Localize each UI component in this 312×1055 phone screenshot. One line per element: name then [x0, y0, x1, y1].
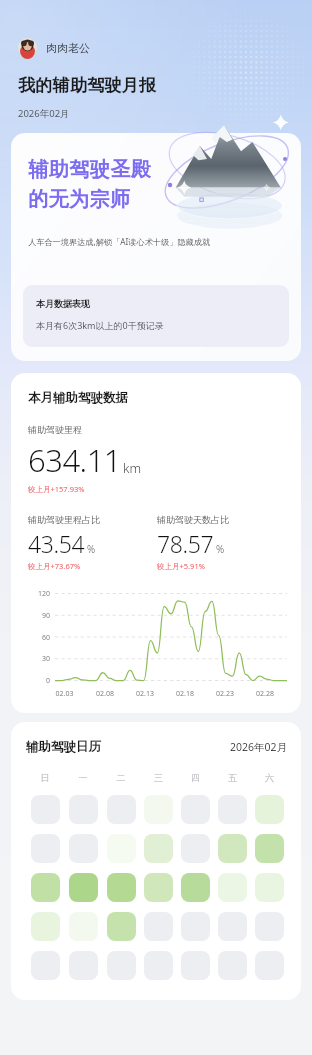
staticText: %	[216, 542, 225, 556]
button[interactable]: Calendar day	[144, 951, 173, 980]
button[interactable]: User avatar	[18, 38, 90, 57]
button[interactable]: Calendar day	[218, 873, 247, 902]
button[interactable]: Calendar day	[255, 912, 284, 941]
button[interactable]: Calendar day	[69, 873, 98, 902]
button[interactable]: Calendar day	[107, 951, 136, 980]
button[interactable]: Calendar day	[218, 795, 247, 824]
button[interactable]: Calendar day	[31, 834, 60, 863]
button[interactable]: Calendar day	[31, 912, 60, 941]
staticText: 634.11	[28, 439, 122, 481]
staticText: 60	[28, 633, 50, 643]
button[interactable]: Calendar day	[69, 951, 98, 980]
staticText: 辅助驾驶天数占比	[157, 514, 229, 525]
button[interactable]: Calendar day	[107, 873, 136, 902]
staticText: 02.23	[205, 689, 245, 699]
staticText: 02.28	[245, 689, 285, 699]
staticText: 的无为宗师	[28, 187, 131, 212]
staticText: 日	[26, 772, 64, 783]
button[interactable]: Calendar day	[107, 795, 136, 824]
button[interactable]: Calendar day	[181, 951, 210, 980]
staticText: 2026年02月	[18, 107, 70, 120]
staticText: 本月辅助驾驶数据	[28, 390, 128, 406]
staticText: 02.08	[85, 689, 125, 699]
staticText: 90	[28, 611, 50, 621]
staticText: 四	[177, 772, 214, 783]
button[interactable]: Calendar day	[69, 912, 98, 941]
staticText: 43.54	[28, 528, 85, 559]
other: Mountain achievement illustration	[153, 107, 295, 237]
staticText: 六	[251, 772, 288, 783]
button[interactable]: Calendar day	[218, 912, 247, 941]
button[interactable]: Calendar day	[31, 795, 60, 824]
button[interactable]: Calendar day	[255, 795, 284, 824]
button[interactable]: Calendar day	[107, 834, 136, 863]
button[interactable]: Calendar day	[181, 912, 210, 941]
staticText: 三	[140, 772, 177, 783]
staticText: 0	[28, 676, 50, 686]
button[interactable]: Calendar day	[144, 873, 173, 902]
staticText: 辅助驾驶圣殿	[28, 157, 151, 182]
staticText: 02.13	[125, 689, 165, 699]
button[interactable]: Calendar day	[255, 951, 284, 980]
other: User avatar	[18, 38, 37, 57]
staticText: 较上月+73.67%	[28, 561, 81, 571]
button[interactable]: Calendar day	[144, 912, 173, 941]
button[interactable]: Calendar day	[69, 795, 98, 824]
button[interactable]: Calendar day	[255, 873, 284, 902]
button[interactable]: Calendar day	[218, 834, 247, 863]
button[interactable]: Calendar day	[107, 912, 136, 941]
staticText: 2026年02月	[230, 740, 288, 754]
staticText: km	[123, 459, 142, 477]
button[interactable]: Calendar day	[144, 834, 173, 863]
staticText: 辅助驾驶里程占比	[28, 514, 100, 525]
staticText: 02.03	[44, 689, 85, 699]
staticText: 本月有6次3km以上的0干预记录	[36, 319, 164, 331]
staticText: %	[87, 542, 96, 556]
button[interactable]: Calendar day	[181, 873, 210, 902]
staticText: 02.18	[165, 689, 205, 699]
button[interactable]: Calendar day	[181, 795, 210, 824]
button[interactable]: Calendar day	[69, 834, 98, 863]
staticText: 较上月+157.93%	[28, 484, 85, 494]
staticText: 120	[28, 589, 50, 599]
button[interactable]: 辅助驾驶圣殿	[11, 133, 301, 361]
staticText: 本月数据表现	[36, 298, 90, 309]
staticText: 二	[102, 772, 140, 783]
button[interactable]: 辅助驾驶日历	[11, 722, 301, 1000]
staticText: 肉肉老公	[46, 41, 90, 55]
staticText: 78.57	[157, 528, 214, 559]
button[interactable]: Calendar day	[31, 951, 60, 980]
button[interactable]: Calendar day	[144, 795, 173, 824]
staticText: 辅助驾驶日历	[26, 739, 101, 755]
staticText: 30	[28, 654, 50, 664]
button[interactable]: 本月数据表现	[23, 285, 289, 347]
button[interactable]: 本月辅助驾驶数据	[11, 373, 301, 713]
button[interactable]: Calendar day	[181, 834, 210, 863]
button[interactable]: Calendar day	[218, 951, 247, 980]
staticText: 人车合一境界达成,解锁「AI读心术十级」隐藏成就	[28, 236, 211, 247]
staticText: 我的辅助驾驶月报	[18, 75, 157, 96]
staticText: 辅助驾驶里程	[28, 424, 82, 435]
staticText: 较上月+5.91%	[157, 561, 205, 571]
staticText: 一	[64, 772, 102, 783]
button[interactable]: Calendar day	[31, 873, 60, 902]
button[interactable]: Calendar day	[255, 834, 284, 863]
staticText: 五	[214, 772, 251, 783]
